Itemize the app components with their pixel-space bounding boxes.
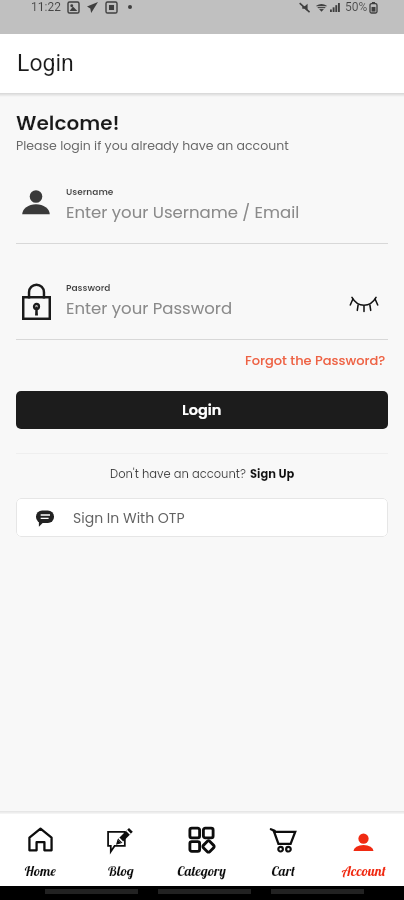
staticText: Don't have an account? [110, 466, 250, 482]
button[interactable]: Sign In With OTP [16, 498, 388, 537]
staticText: Login [182, 400, 222, 420]
button[interactable]: Sign Up [250, 466, 295, 482]
button[interactable]: Cart [242, 814, 323, 886]
button[interactable]: Category [161, 814, 242, 886]
staticText: Welcome! [16, 109, 120, 137]
staticText: 11:22 [31, 0, 61, 14]
staticText: Enter your Password [66, 297, 233, 320]
staticText: Login [17, 50, 74, 77]
button[interactable]: Home [0, 814, 80, 886]
staticText: Sign In With OTP [73, 508, 185, 528]
staticText: 50% [345, 0, 368, 14]
staticText: Account [342, 862, 386, 880]
button[interactable]: Login [16, 391, 388, 429]
button[interactable]: Blog [80, 814, 161, 886]
staticText: Enter your Username / Email [66, 201, 300, 224]
staticText: Blog [107, 862, 134, 880]
staticText: Please login if you already have an acco… [16, 137, 289, 154]
button[interactable]: Account [323, 814, 404, 886]
staticText: Cart [271, 862, 295, 880]
button[interactable]: Toggle password visibility [340, 284, 388, 318]
button[interactable]: Forgot the Password? [243, 349, 388, 371]
staticText: Username [66, 186, 114, 199]
staticText: Category [177, 862, 226, 880]
staticText: Home [24, 862, 56, 880]
staticText: Password [66, 282, 111, 295]
